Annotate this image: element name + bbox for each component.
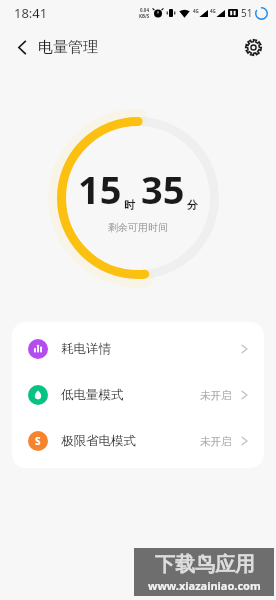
- staticText: 未开启: [200, 435, 232, 448]
- staticText: 未开启: [200, 389, 232, 402]
- button[interactable]: 低电量模式: [12, 372, 264, 418]
- staticText: www.xiazainiao.com: [148, 578, 261, 593]
- button[interactable]: Settings: [238, 32, 268, 62]
- staticText: 4G: [193, 8, 199, 14]
- staticText: 51: [241, 6, 253, 20]
- staticText: KB/S: [139, 13, 150, 19]
- staticText: 18:41: [14, 4, 48, 22]
- staticText: 0.04: [140, 7, 149, 13]
- staticText: 极限省电模式: [61, 433, 136, 449]
- staticText: 下载鸟应用: [155, 552, 255, 577]
- staticText: 分: [187, 198, 198, 212]
- staticText: S: [35, 434, 41, 448]
- staticText: 15: [78, 163, 122, 215]
- staticText: 耗电详情: [61, 341, 111, 357]
- staticText: 低电量模式: [61, 387, 124, 403]
- button[interactable]: Back: [6, 31, 38, 63]
- staticText: 时: [124, 198, 135, 212]
- staticText: 剩余可用时间: [108, 221, 168, 234]
- staticText: 4G: [210, 8, 216, 14]
- staticText: 电量管理: [38, 38, 98, 57]
- button[interactable]: 耗电详情: [12, 326, 264, 372]
- button[interactable]: S: [12, 418, 264, 464]
- staticText: 35: [141, 163, 185, 215]
